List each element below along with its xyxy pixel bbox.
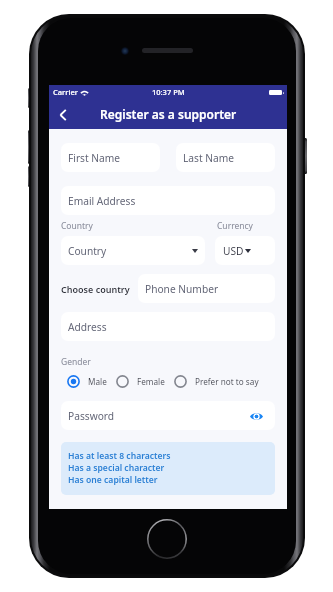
button[interactable]: Country: [61, 236, 205, 265]
staticText: Country: [68, 244, 107, 258]
button[interactable]: Address: [61, 312, 275, 341]
button[interactable]: Last Name: [176, 143, 275, 172]
staticText: Email Address: [68, 194, 136, 208]
staticText: Password: [68, 409, 115, 423]
staticText: Last Name: [183, 151, 234, 165]
staticText: Female: [137, 376, 165, 387]
staticText: 10:37 PM: [152, 87, 185, 97]
staticText: Phone Number: [145, 282, 219, 296]
button[interactable]: Back: [49, 101, 76, 128]
staticText: Choose country: [61, 283, 130, 295]
staticText: Male: [88, 376, 107, 387]
staticText: USD: [223, 244, 244, 258]
staticText: Has one capital letter: [68, 474, 158, 486]
staticText: Address: [68, 320, 107, 334]
staticText: First Name: [68, 151, 121, 165]
button[interactable]: USD: [215, 236, 275, 265]
staticText: Has at least 8 characters: [68, 450, 171, 462]
staticText: Gender: [61, 356, 91, 368]
staticText: Country: [61, 220, 93, 232]
button[interactable]: Female: [116, 375, 165, 388]
button[interactable]: Email Address: [61, 186, 275, 215]
button[interactable]: Password: [61, 401, 275, 430]
button[interactable]: Prefer not to say: [174, 375, 259, 388]
button[interactable]: First Name: [61, 143, 160, 172]
button[interactable]: Phone Number: [138, 274, 275, 303]
staticText: Carrier: [53, 87, 78, 97]
staticText: Prefer not to say: [195, 376, 259, 387]
staticText: Register as a supporter: [100, 106, 237, 122]
button[interactable]: Show password: [247, 407, 265, 425]
staticText: Has a special character: [68, 462, 165, 474]
button[interactable]: Male: [67, 375, 107, 388]
staticText: Currency: [217, 220, 275, 232]
